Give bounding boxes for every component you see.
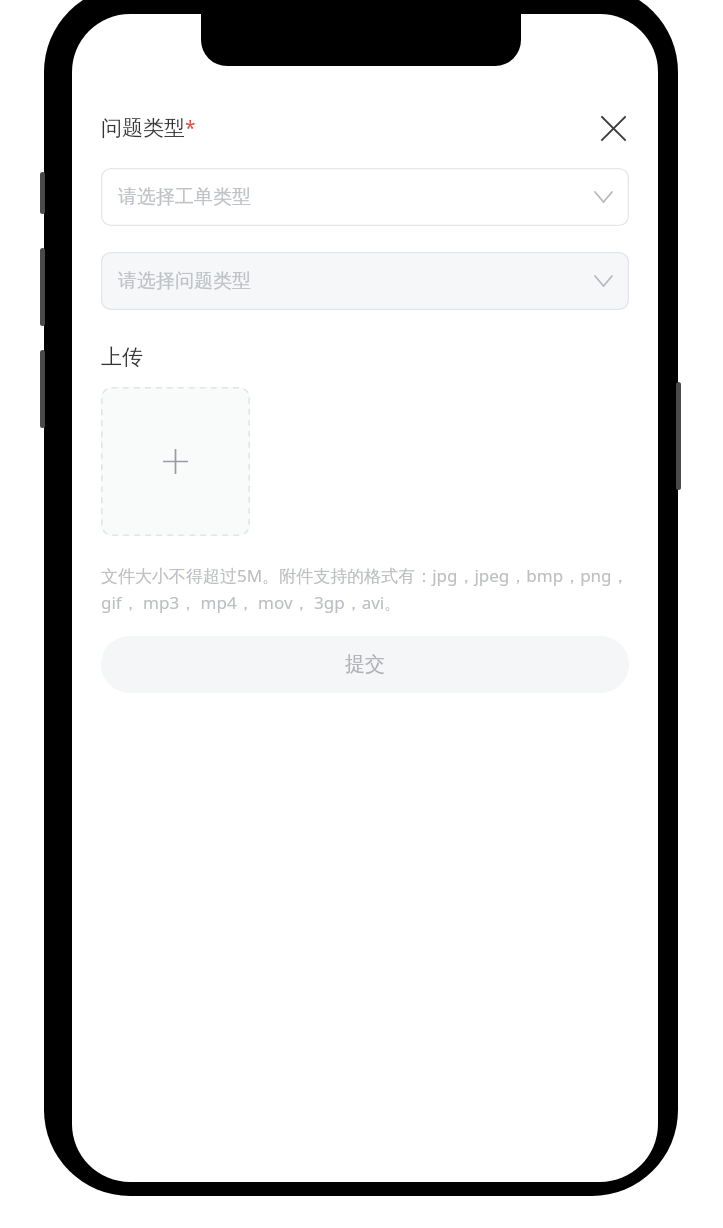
button[interactable]: Close	[591, 106, 635, 150]
staticText: 请选择问题类型	[118, 269, 251, 293]
staticText: 文件大小不得超过5M。附件支持的格式有：jpg，jpeg，bmp，png，gif…	[101, 564, 640, 614]
staticText: 上传	[101, 344, 143, 370]
button[interactable]: 请选择问题类型	[101, 252, 629, 310]
button[interactable]: Upload file	[101, 387, 250, 536]
staticText: 请选择工单类型	[118, 185, 251, 209]
staticText: 提交	[345, 652, 385, 677]
staticText: 问题类型*	[101, 115, 196, 142]
button[interactable]: 请选择工单类型	[101, 168, 629, 226]
button[interactable]: 提交	[101, 636, 629, 693]
